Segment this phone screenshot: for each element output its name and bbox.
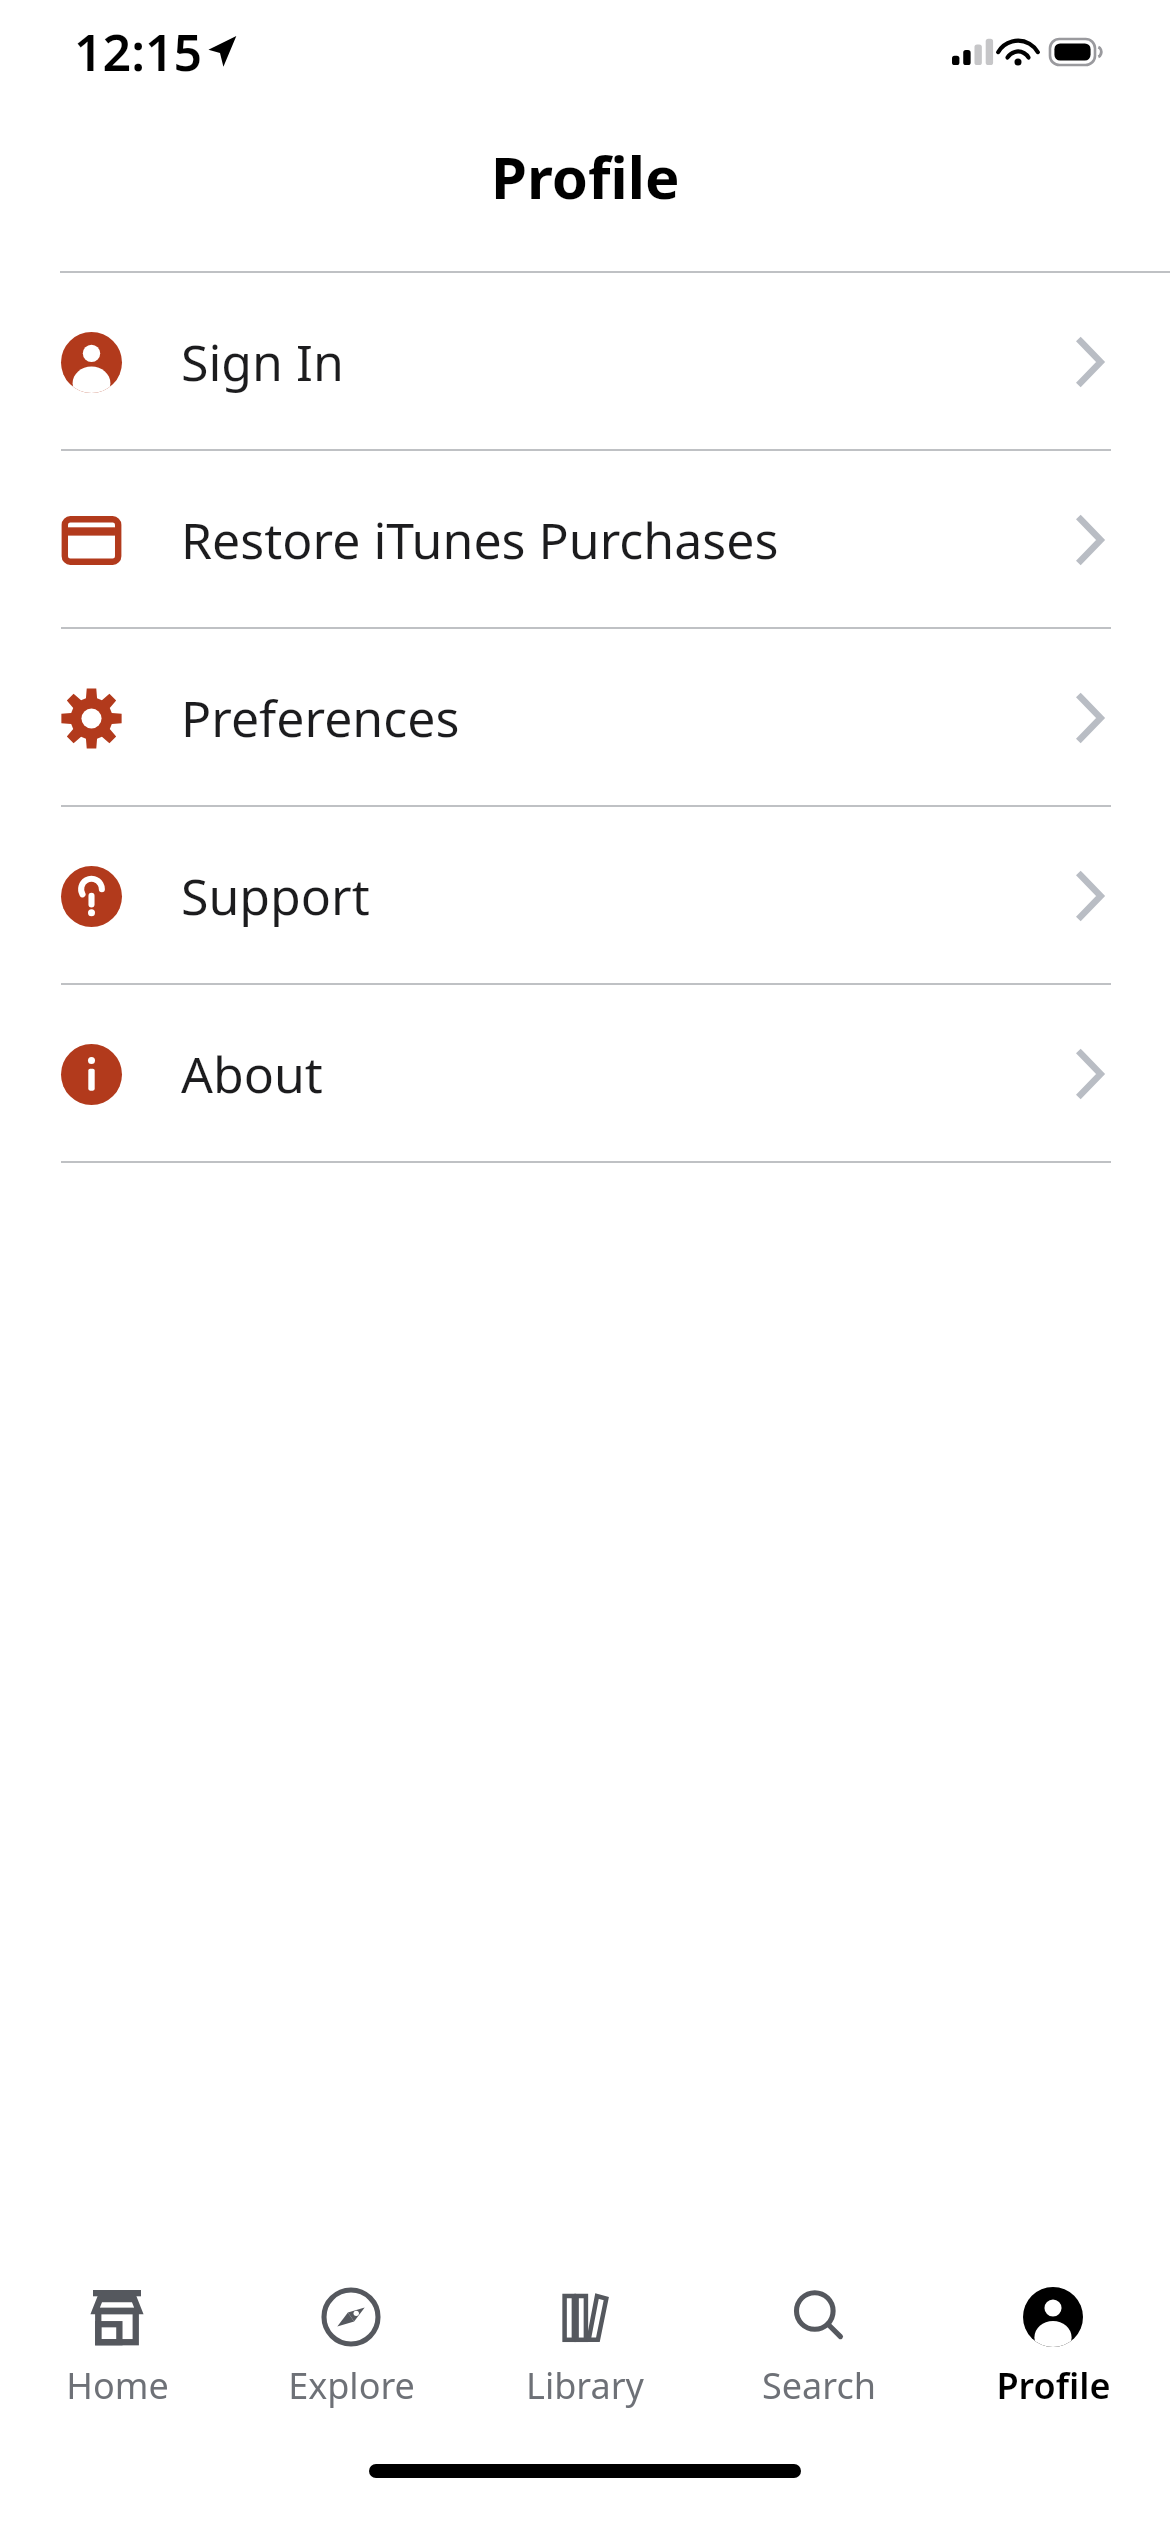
staticText: Profile: [491, 137, 680, 216]
button[interactable]: Explore: [234, 2264, 468, 2432]
button[interactable]: Profile: [936, 2264, 1170, 2432]
other: Library: [555, 2287, 615, 2347]
button[interactable]: About: [0, 985, 1170, 1163]
staticText: Profile: [996, 2361, 1111, 2410]
staticText: About: [181, 1040, 1071, 1108]
other: Search: [789, 2287, 849, 2347]
other: Profile: [1023, 2287, 1083, 2347]
staticText: Preferences: [181, 684, 1071, 752]
staticText: Library: [526, 2361, 644, 2410]
button[interactable]: Library: [468, 2264, 702, 2432]
other: Explore: [321, 2287, 381, 2347]
staticText: Sign In: [181, 328, 1071, 396]
button[interactable]: Search: [702, 2264, 936, 2432]
other: Home: [87, 2287, 147, 2347]
button[interactable]: Restore iTunes Purchases: [0, 451, 1170, 629]
button[interactable]: Support: [0, 807, 1170, 985]
button[interactable]: Preferences: [0, 629, 1170, 807]
staticText: Support: [181, 862, 1071, 930]
staticText: Home: [66, 2361, 169, 2410]
staticText: Restore iTunes Purchases: [181, 506, 1071, 574]
staticText: 12:15: [74, 18, 203, 86]
button[interactable]: Sign In: [0, 273, 1170, 451]
staticText: Explore: [288, 2361, 415, 2410]
button[interactable]: Home: [0, 2264, 234, 2432]
staticText: Search: [762, 2361, 876, 2410]
